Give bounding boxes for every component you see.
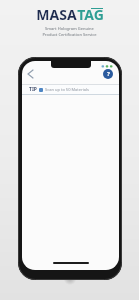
button[interactable]: TIP (22, 85, 119, 94)
staticText: TAG (77, 5, 104, 24)
staticText: Product Certification Service (42, 32, 97, 37)
staticText: Scan up to 50 Materials (45, 87, 89, 92)
staticText: ? (107, 70, 110, 78)
staticText: MASA (36, 5, 77, 24)
staticText: TIP (29, 86, 37, 93)
button[interactable] (25, 68, 36, 80)
staticText: Smart Hologram Genuine (45, 26, 94, 31)
button[interactable]: ? (103, 69, 113, 79)
